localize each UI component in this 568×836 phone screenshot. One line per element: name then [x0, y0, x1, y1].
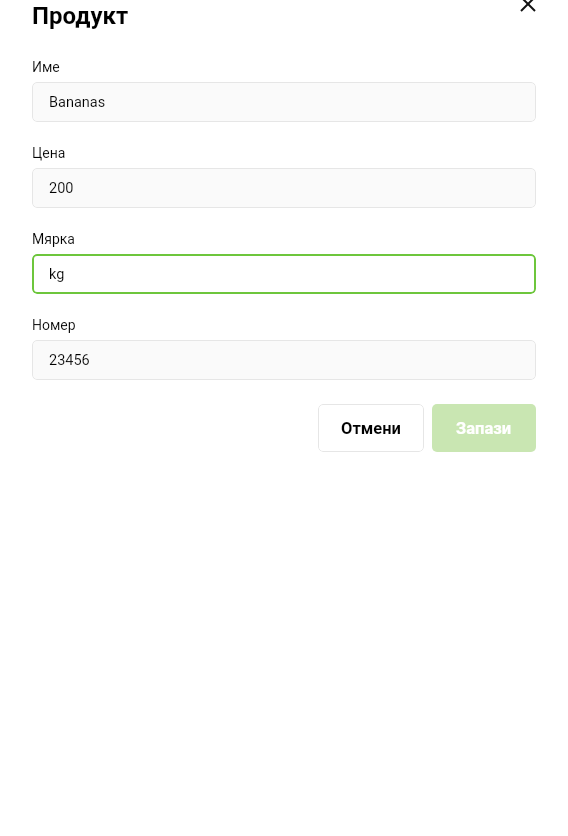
staticText: Запази — [456, 419, 512, 438]
button[interactable]: kg — [32, 254, 536, 294]
staticText: Име — [32, 59, 60, 75]
button[interactable]: Запази — [432, 404, 536, 452]
button[interactable]: Bananas — [32, 82, 536, 122]
staticText: kg — [49, 266, 65, 283]
button[interactable]: 23456 — [32, 340, 536, 380]
button[interactable]: Отмени — [318, 404, 424, 452]
staticText: 23456 — [49, 352, 90, 369]
staticText: Продукт — [32, 2, 129, 30]
staticText: Мярка — [32, 231, 75, 247]
staticText: Отмени — [341, 419, 401, 438]
staticText: Номер — [32, 317, 76, 333]
staticText: Bananas — [49, 94, 106, 111]
staticText: Цена — [32, 145, 66, 161]
staticText: 200 — [49, 180, 74, 197]
button[interactable]: 200 — [32, 168, 536, 208]
button[interactable]: Close — [508, 0, 548, 24]
